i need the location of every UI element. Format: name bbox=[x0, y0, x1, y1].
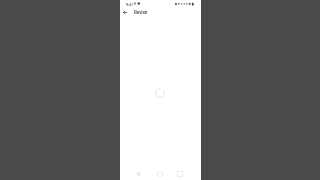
button[interactable]: Recent apps bbox=[175, 169, 185, 179]
staticText: Revise bbox=[134, 10, 148, 15]
button[interactable]: Back bbox=[133, 169, 143, 179]
button[interactable]: Back bbox=[120, 8, 129, 17]
button[interactable]: Home bbox=[155, 169, 165, 179]
staticText: 9:41 bbox=[126, 2, 134, 6]
